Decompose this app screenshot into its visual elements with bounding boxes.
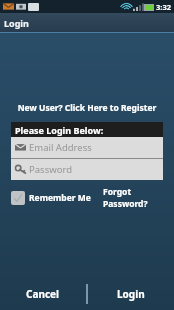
staticText: Cancel: [26, 287, 60, 301]
button[interactable]: Remember Me: [11, 191, 91, 205]
staticText: 3:32: [156, 2, 171, 12]
staticText: Login: [117, 287, 145, 301]
staticText: Email Address: [29, 141, 92, 154]
button[interactable]: New User? Click Here to Register: [0, 100, 174, 116]
button[interactable]: Forgot Password?: [103, 186, 163, 210]
staticText: Password: [29, 163, 72, 176]
button[interactable]: Cancel: [0, 277, 86, 310]
button[interactable]: Email Address: [11, 137, 163, 158]
staticText: Remember Me: [29, 192, 91, 204]
button[interactable]: Login: [88, 277, 174, 310]
staticText: Login: [4, 17, 29, 29]
staticText: Please Login Below:: [15, 124, 104, 136]
button[interactable]: Password: [11, 159, 163, 180]
